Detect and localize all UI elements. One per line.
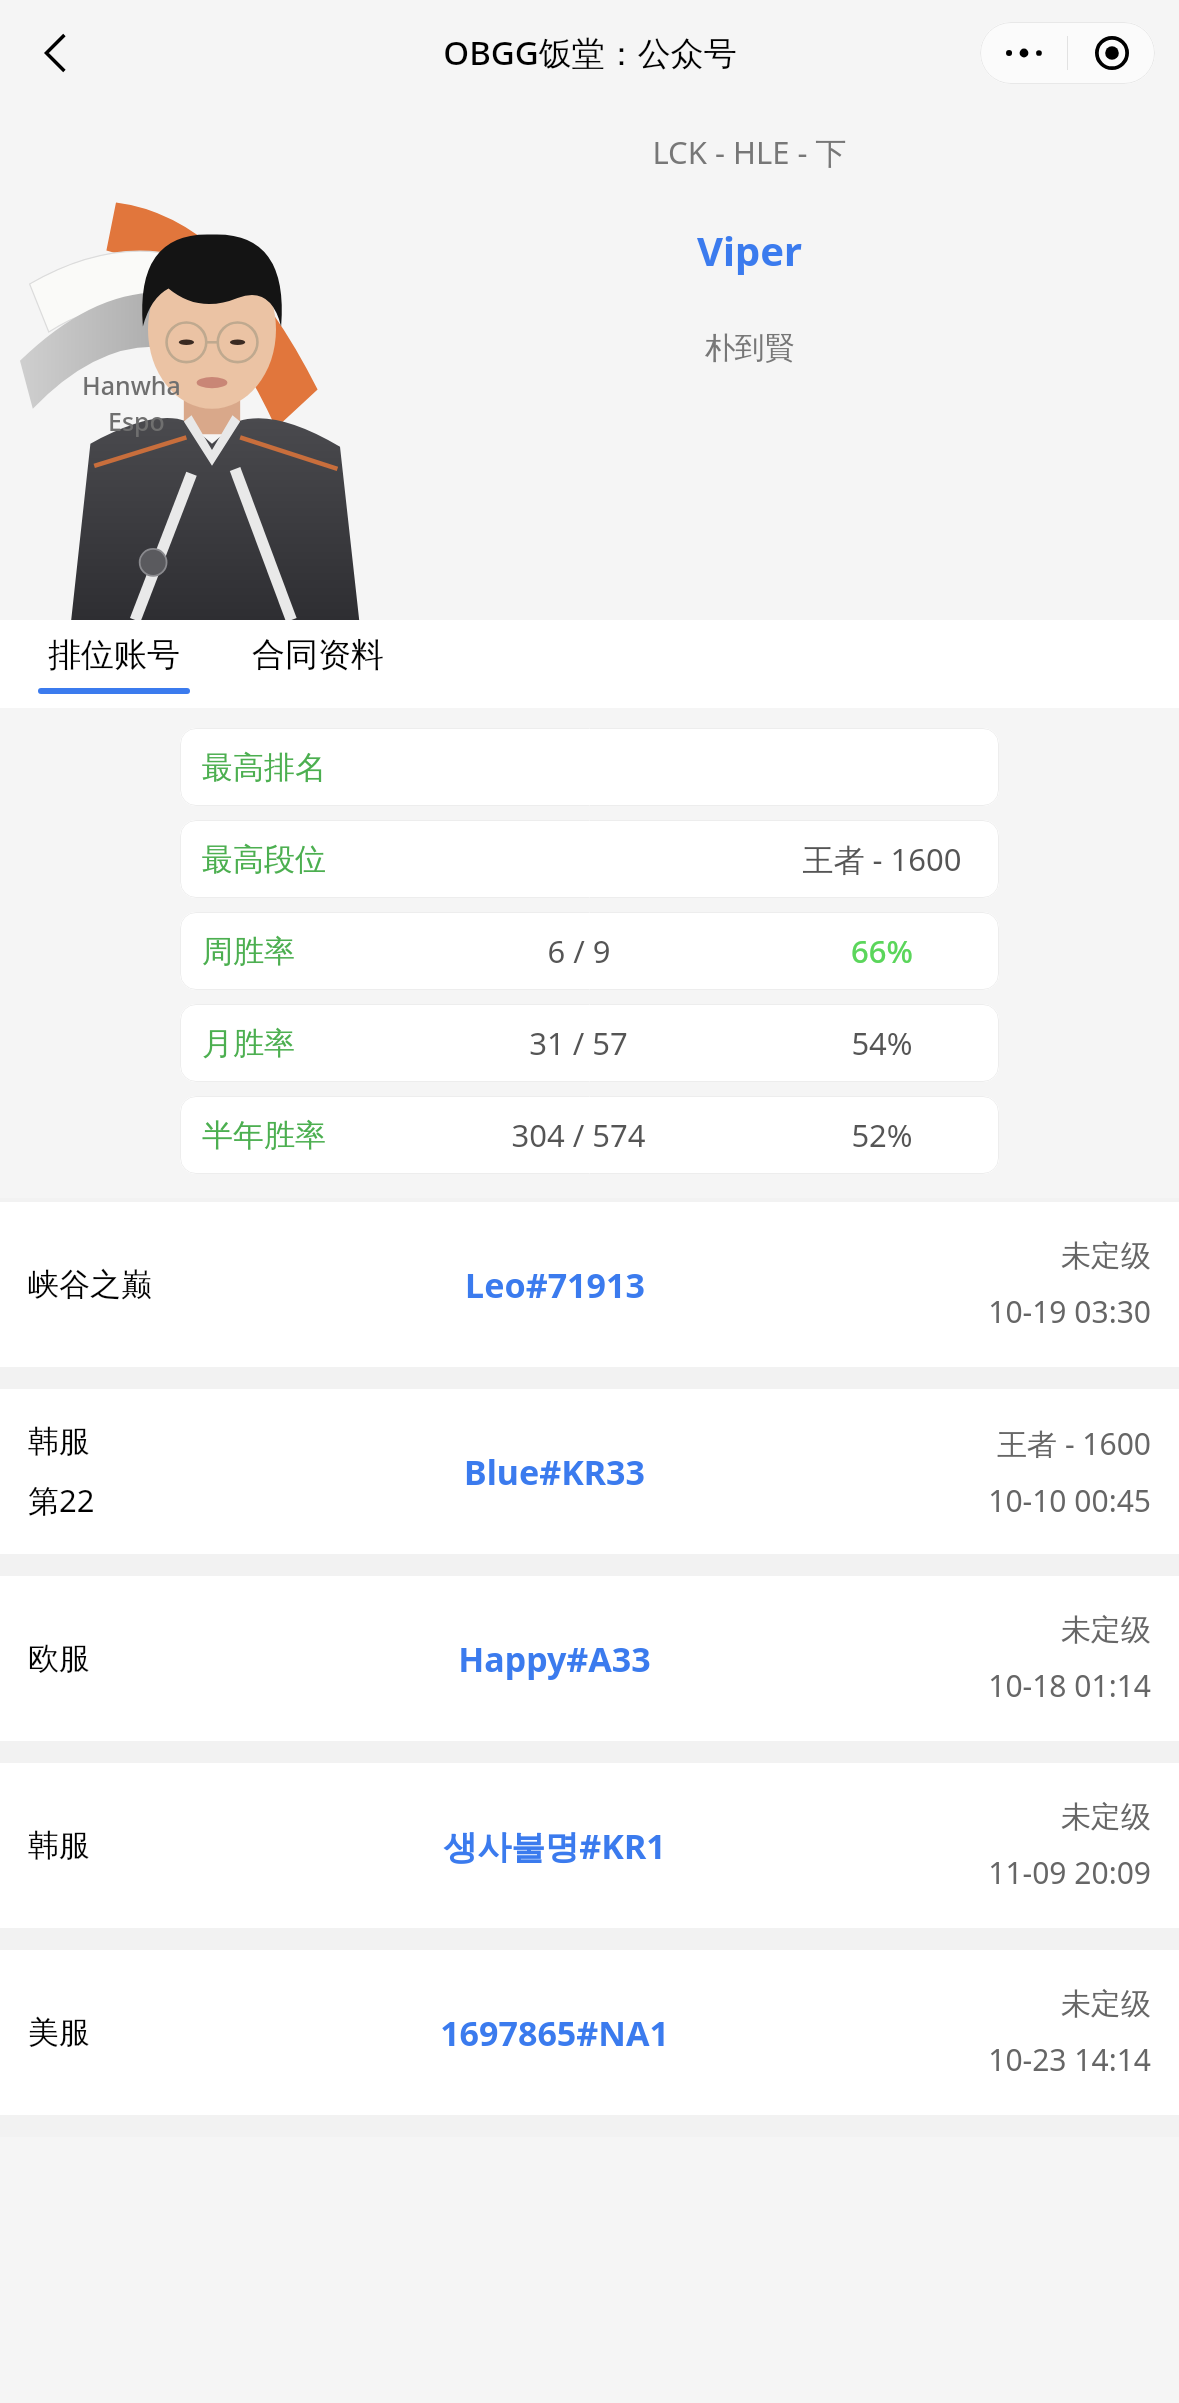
staticText: 半年胜率 [202,1116,326,1155]
button[interactable]: 排位账号 [34,628,194,700]
staticText: 304 / 574 [511,1114,646,1156]
staticText: Viper [697,223,802,277]
staticText: Blue#KR33 [464,1449,645,1495]
staticText: 생사불명#KR1 [443,1823,666,1869]
button[interactable]: 欧服 [0,1576,1179,1741]
staticText: 未定级 [1061,1985,1151,2023]
staticText: 第22 [28,1479,95,1521]
staticText: 31 / 57 [529,1022,628,1064]
staticText: 10-18 01:14 [988,1665,1151,1706]
button[interactable]: Close [1068,22,1155,84]
staticText: 10-19 03:30 [988,1291,1151,1332]
button[interactable]: 半年胜率 [180,1096,999,1174]
staticText: 王者 - 1600 [802,838,962,880]
staticText: 王者 - 1600 [997,1423,1151,1464]
staticText: 最高段位 [202,840,326,879]
staticText: Espo [108,404,165,438]
staticText: 1697865#NA1 [440,2010,669,2056]
staticText: 10-10 00:45 [988,1480,1151,1521]
staticText: 欧服 [28,1639,90,1678]
staticText: 52% [851,1114,913,1156]
staticText: 11-09 20:09 [988,1852,1151,1893]
staticText: OBGG饭堂：公众号 [443,30,737,75]
staticText: 美服 [28,2013,90,2052]
button[interactable]: 最高段位 [180,820,999,898]
staticText: 韩服 [28,1826,90,1865]
staticText: Happy#A33 [458,1636,651,1682]
staticText: 峡谷之巅 [28,1265,152,1304]
staticText: 未定级 [1061,1611,1151,1649]
staticText: 最高排名 [202,748,326,787]
staticText: LCK - HLE - 下 [652,131,847,173]
button[interactable]: 韩服 [0,1389,1179,1554]
button[interactable]: 韩服 [0,1763,1179,1928]
staticText: 未定级 [1061,1798,1151,1836]
button[interactable]: 周胜率 [180,912,999,990]
staticText: Leo#71913 [465,1262,645,1308]
staticText: 合同资料 [252,634,384,676]
staticText: 排位账号 [48,634,180,676]
staticText: Hanwha [82,368,181,402]
staticText: 月胜率 [202,1024,295,1063]
staticText: 韩服 [28,1422,90,1461]
button[interactable]: Back [18,15,94,91]
button[interactable]: 合同资料 [238,628,398,700]
staticText: 未定级 [1061,1237,1151,1275]
staticText: 6 / 9 [547,930,611,972]
button[interactable]: 最高排名 [180,728,999,806]
staticText: 10-23 14:14 [988,2039,1151,2080]
staticText: 54% [851,1022,913,1064]
staticText: 66% [851,930,913,972]
button[interactable]: 峡谷之巅 [0,1202,1179,1367]
button[interactable]: More [980,22,1067,84]
button[interactable]: 月胜率 [180,1004,999,1082]
staticText: 朴到賢 [705,329,795,367]
staticText: 周胜率 [202,932,295,971]
button[interactable]: 美服 [0,1950,1179,2115]
